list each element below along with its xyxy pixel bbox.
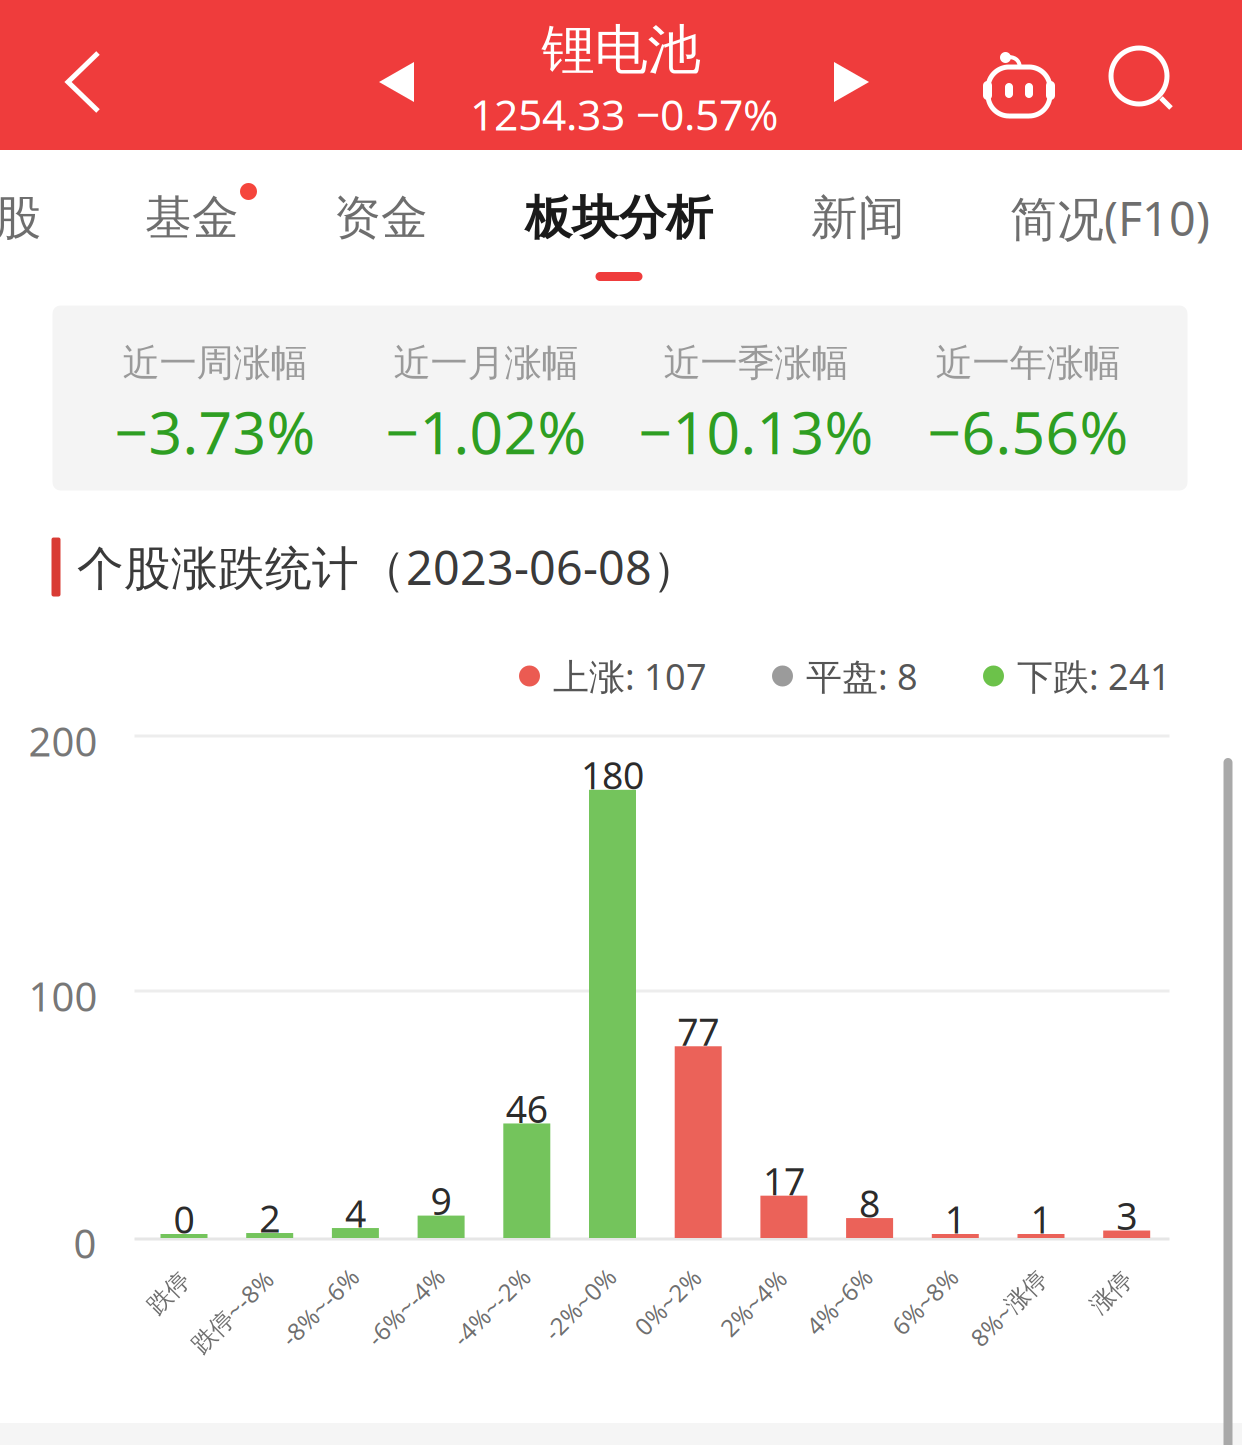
staticText: 上涨: 107: [553, 652, 707, 700]
staticText: 近一季涨幅: [663, 340, 848, 386]
staticText: 个股涨跌统计（2023-06-08）: [77, 536, 699, 598]
staticText: 近一月涨幅: [393, 340, 578, 386]
staticText: 8: [859, 1178, 880, 1228]
button[interactable]: 简况(F10): [985, 160, 1235, 290]
button[interactable]: 资金: [256, 160, 506, 290]
staticText: −1.02%: [385, 392, 586, 470]
button[interactable]: 股: [0, 160, 143, 290]
staticText: 跌停: [144, 1278, 192, 1308]
staticText: 180: [581, 750, 644, 800]
button[interactable]: 新闻: [733, 160, 983, 290]
staticText: −10.13%: [638, 392, 873, 470]
button[interactable]: 返回: [23, 17, 143, 147]
staticText: 近一年涨幅: [935, 340, 1120, 386]
staticText: 77: [677, 1006, 719, 1056]
staticText: -4%~-2%: [442, 1291, 540, 1323]
staticText: 1: [1030, 1194, 1051, 1244]
staticText: 简况(F10): [1010, 187, 1210, 249]
staticText: 1: [945, 1194, 966, 1244]
staticText: 2%~4%: [712, 1287, 794, 1319]
staticText: 涨停: [1087, 1278, 1135, 1307]
button[interactable]: 板块分析: [494, 160, 744, 290]
button[interactable]: 搜索: [1087, 14, 1197, 144]
staticText: 9: [431, 1176, 452, 1225]
staticText: 资金: [334, 189, 428, 247]
staticText: 平盘: 8: [806, 652, 918, 700]
button[interactable]: 下一板块: [801, 22, 901, 142]
staticText: 新闻: [811, 189, 905, 247]
staticText: 0: [73, 1216, 96, 1269]
staticText: 跌停~-8%: [180, 1296, 284, 1327]
staticText: 200: [28, 714, 97, 767]
staticText: 板块分析: [525, 189, 713, 247]
staticText: 0: [173, 1194, 194, 1244]
staticText: 4: [345, 1188, 366, 1238]
staticText: 8%~涨停: [960, 1292, 1056, 1324]
staticText: −3.73%: [114, 392, 315, 470]
staticText: 17: [763, 1156, 805, 1205]
staticText: 锂电池: [541, 17, 700, 83]
staticText: 100: [28, 969, 97, 1022]
staticText: 2: [259, 1193, 280, 1243]
staticText: 基金: [145, 189, 239, 247]
staticText: 下跌: 241: [1017, 652, 1171, 700]
staticText: 4%~6%: [798, 1286, 880, 1317]
staticText: −6.56%: [927, 392, 1128, 470]
button[interactable]: 基金: [67, 160, 317, 290]
staticText: 近一周涨幅: [122, 340, 307, 386]
staticText: 6%~8%: [884, 1286, 966, 1317]
staticText: 46: [506, 1084, 548, 1133]
staticText: -2%~0%: [535, 1288, 625, 1320]
staticText: 股: [0, 189, 41, 247]
staticText: 0%~2%: [627, 1286, 709, 1318]
button[interactable]: 上一板块: [347, 22, 447, 142]
staticText: 1254.33 −0.57%: [470, 86, 778, 142]
staticText: -8%~-6%: [271, 1291, 369, 1323]
button[interactable]: 智能助手: [964, 19, 1074, 149]
staticText: 3: [1116, 1191, 1137, 1240]
staticText: -6%~-4%: [357, 1291, 455, 1323]
